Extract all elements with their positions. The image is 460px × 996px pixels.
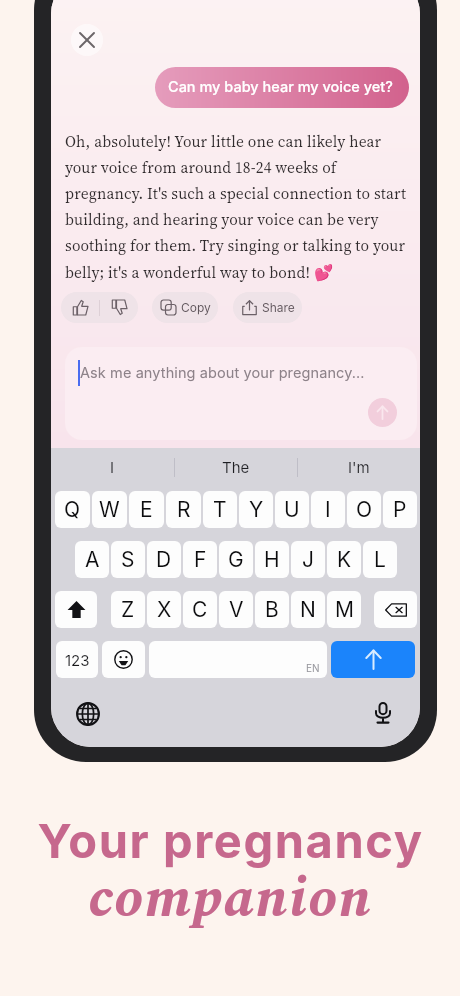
staticText: W — [99, 497, 120, 522]
staticText: V — [229, 597, 244, 622]
button[interactable]: W — [92, 491, 127, 528]
staticText: M — [335, 597, 354, 622]
button[interactable]: Ask me anything about your pregnancy... — [65, 347, 417, 440]
button[interactable]: Like — [61, 292, 99, 323]
button[interactable]: The — [175, 448, 297, 486]
button[interactable]: C — [183, 591, 217, 628]
staticText: Q — [64, 497, 81, 522]
button[interactable]: T — [203, 491, 237, 528]
button[interactable]: Z — [111, 591, 145, 628]
staticText: R — [177, 497, 191, 522]
button[interactable]: Share — [233, 292, 302, 323]
staticText: J — [302, 547, 314, 572]
staticText: O — [356, 497, 373, 522]
staticText: U — [284, 497, 300, 522]
button[interactable]: V — [219, 591, 253, 628]
staticText: L — [374, 547, 386, 572]
staticText: D — [156, 547, 172, 572]
button[interactable]: A — [75, 541, 109, 578]
button[interactable]: Close — [71, 24, 103, 56]
staticText: The — [222, 458, 250, 476]
button[interactable]: X — [147, 591, 181, 628]
staticText: EN — [306, 662, 320, 674]
button[interactable]: M — [327, 591, 361, 628]
staticText: Y — [249, 497, 264, 522]
staticText: 123 — [65, 651, 90, 669]
button[interactable]: EN — [149, 641, 327, 678]
staticText: Z — [121, 597, 135, 622]
button[interactable]: Send — [331, 641, 415, 678]
button[interactable]: N — [291, 591, 325, 628]
staticText: Can my baby hear my voice yet? — [168, 78, 393, 96]
staticText: H — [264, 547, 280, 572]
button[interactable]: R — [166, 491, 201, 528]
button[interactable]: I'm — [298, 448, 420, 486]
button[interactable]: U — [275, 491, 309, 528]
button[interactable]: Send — [368, 398, 397, 427]
staticText: E — [140, 497, 153, 522]
button[interactable]: Can my baby hear my voice yet? — [155, 67, 409, 108]
button[interactable]: P — [383, 491, 417, 528]
staticText: B — [265, 597, 279, 622]
staticText: G — [228, 547, 244, 572]
button[interactable]: J — [291, 541, 325, 578]
staticText: A — [85, 547, 100, 572]
button[interactable]: Shift — [55, 591, 97, 628]
button[interactable]: B — [255, 591, 289, 628]
staticText: C — [192, 597, 208, 622]
button[interactable]: Y — [239, 491, 273, 528]
staticText: companion — [88, 861, 373, 934]
button[interactable]: Dislike — [100, 292, 138, 323]
staticText: Ask me anything about your pregnancy... — [80, 364, 365, 382]
staticText: K — [337, 547, 352, 572]
button[interactable]: Change language — [71, 697, 105, 731]
staticText: Oh, absolutely! Your little one can like… — [65, 131, 415, 283]
staticText: N — [300, 597, 316, 622]
button[interactable]: K — [327, 541, 361, 578]
button[interactable]: Q — [55, 491, 90, 528]
button[interactable]: Emoji — [102, 641, 145, 678]
button[interactable]: E — [129, 491, 164, 528]
button[interactable]: I — [51, 448, 174, 486]
staticText: Share — [262, 300, 295, 315]
staticText: I — [325, 497, 331, 522]
staticText: P — [393, 497, 407, 522]
staticText: T — [213, 497, 227, 522]
button[interactable]: O — [347, 491, 381, 528]
button[interactable]: H — [255, 541, 289, 578]
staticText: Your pregnancy — [37, 812, 424, 869]
button[interactable]: Backspace — [374, 591, 417, 628]
button[interactable]: D — [147, 541, 181, 578]
staticText: I'm — [348, 458, 370, 476]
staticText: Copy — [181, 300, 211, 315]
button[interactable]: Voice input — [366, 697, 400, 731]
button[interactable]: G — [219, 541, 253, 578]
button[interactable]: F — [183, 541, 217, 578]
staticText: I — [110, 458, 115, 476]
button[interactable]: S — [111, 541, 145, 578]
button[interactable]: 123 — [56, 641, 98, 678]
button[interactable]: I — [311, 491, 345, 528]
staticText: S — [121, 547, 135, 572]
button[interactable]: Copy — [152, 292, 218, 323]
button[interactable]: L — [363, 541, 397, 578]
staticText: X — [157, 597, 172, 622]
staticText: F — [194, 547, 207, 572]
